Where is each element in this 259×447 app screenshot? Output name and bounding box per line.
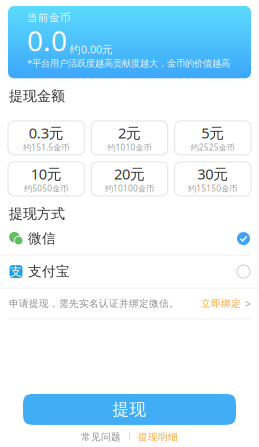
staticText: 2元	[118, 123, 141, 143]
staticText: 当前金币	[27, 11, 71, 24]
button[interactable]: 微信	[0, 223, 259, 255]
button[interactable]: 20元	[91, 162, 168, 196]
button[interactable]: 申请提现，需先实名认证并绑定微信。	[0, 289, 259, 319]
button[interactable]: 提现	[23, 394, 236, 425]
staticText: 约0.00元	[70, 42, 113, 56]
button[interactable]: 提现明细	[138, 431, 178, 443]
staticText: 微信	[28, 230, 56, 247]
staticText: 10元	[31, 164, 62, 184]
staticText: 约5050金币	[24, 183, 68, 194]
staticText: 支	[10, 264, 22, 279]
button[interactable]: 30元	[175, 162, 251, 196]
staticText: 立即绑定	[201, 297, 241, 310]
button[interactable]: 0.3元	[8, 121, 84, 155]
staticText: 约10100金币	[105, 183, 154, 194]
staticText: 20元	[114, 164, 145, 184]
staticText: 约1010金币	[107, 142, 151, 153]
staticText: 申请提现，需先实名认证并绑定微信。	[9, 297, 179, 310]
staticText: 常见问题	[81, 431, 121, 443]
button[interactable]: 5元	[175, 121, 251, 155]
staticText: 约2525金币	[191, 142, 235, 153]
staticText: 30元	[197, 164, 228, 184]
staticText: *平台用户活跃度越高贡献度越大，金币的价值越高	[27, 57, 230, 69]
staticText: 5元	[201, 123, 224, 143]
button[interactable]: 2元	[91, 121, 168, 155]
staticText: 约151.5金币	[23, 142, 69, 153]
staticText: 支付宝	[28, 263, 70, 280]
staticText: 提现金额	[9, 87, 65, 105]
staticText: 提现明细	[138, 431, 178, 443]
staticText: 提现方式	[9, 205, 65, 222]
button[interactable]: 10元	[8, 162, 84, 196]
staticText: >	[245, 296, 251, 311]
button[interactable]: 支	[0, 256, 259, 288]
staticText: 0.0	[27, 21, 67, 59]
staticText: 0.3元	[29, 123, 64, 143]
staticText: 提现	[112, 399, 146, 420]
button[interactable]: 常见问题	[81, 431, 121, 443]
staticText: 约15150金币	[188, 183, 237, 194]
